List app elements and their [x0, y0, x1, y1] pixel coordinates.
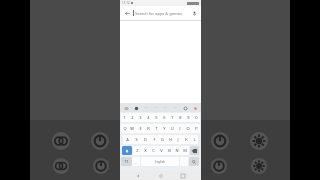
staticText: 3	[139, 115, 142, 120]
button[interactable]: 9	[184, 113, 192, 122]
button[interactable]: D	[141, 135, 150, 144]
button[interactable]: G	[158, 135, 166, 144]
staticText: 5	[155, 115, 158, 120]
button[interactable]: 4	[144, 113, 152, 122]
button[interactable]: Back	[123, 9, 131, 17]
staticText: J	[177, 137, 179, 142]
button[interactable]: 7	[168, 113, 176, 122]
staticText: Search for apps & games	[135, 11, 182, 16]
staticText: L	[193, 137, 196, 142]
button[interactable]: App icon	[93, 158, 109, 174]
button[interactable]: App icon	[91, 132, 109, 150]
button[interactable]: W	[128, 124, 136, 133]
staticText: N	[175, 148, 179, 153]
button[interactable]: App icon	[211, 158, 227, 174]
staticText: Q	[123, 126, 127, 131]
button[interactable]: S	[132, 135, 141, 144]
button[interactable]: 3	[136, 113, 144, 122]
button[interactable]: Suggestion	[162, 105, 168, 110]
button[interactable]: T	[152, 124, 160, 133]
staticText: 7	[171, 115, 174, 120]
button[interactable]: L	[190, 135, 198, 144]
button[interactable]: U	[168, 124, 176, 133]
button[interactable]: B	[165, 146, 173, 155]
staticText: English	[155, 160, 166, 164]
button[interactable]: 8	[176, 113, 184, 122]
staticText: 1	[123, 115, 126, 120]
button[interactable]: More options	[192, 105, 198, 111]
button[interactable]: Home	[157, 172, 165, 180]
staticText: C	[152, 148, 155, 153]
button[interactable]: Suggestion	[153, 105, 159, 110]
button[interactable]: A	[123, 135, 132, 144]
button[interactable]: App icon	[131, 132, 149, 150]
button[interactable]: App icon	[171, 132, 189, 150]
staticText: B	[168, 148, 171, 153]
staticText: 9	[187, 115, 190, 120]
button[interactable]: App icon	[211, 132, 229, 150]
button[interactable]: Shift	[122, 146, 132, 155]
staticText: P	[195, 126, 198, 131]
button[interactable]: X	[141, 146, 149, 155]
staticText: G	[161, 137, 164, 142]
button[interactable]: App icon	[250, 132, 268, 150]
button[interactable]: H	[166, 135, 174, 144]
button[interactable]: English	[141, 157, 179, 166]
staticText: T	[155, 126, 158, 131]
button[interactable]: Back	[134, 172, 142, 180]
button[interactable]: C	[149, 146, 157, 155]
button[interactable]: Q	[121, 124, 128, 133]
button[interactable]: Search	[189, 157, 199, 166]
button[interactable]: Backspace	[190, 146, 199, 155]
staticText: 6	[163, 115, 166, 120]
button[interactable]: Suggestion	[143, 105, 149, 110]
button[interactable]: Search in keyboard	[133, 105, 139, 111]
button[interactable]: R	[144, 124, 152, 133]
button[interactable]: Y	[160, 124, 168, 133]
button[interactable]: 2	[128, 113, 136, 122]
button[interactable]: Search for apps & games	[135, 11, 190, 16]
button[interactable]: Voice search	[190, 9, 198, 17]
button[interactable]: Settings	[182, 105, 188, 111]
button[interactable]: I	[176, 124, 184, 133]
staticText: E	[139, 126, 142, 131]
button[interactable]: E	[136, 124, 144, 133]
button[interactable]: J	[174, 135, 182, 144]
staticText: 2	[131, 115, 134, 120]
button[interactable]: 1	[121, 113, 128, 122]
staticText: H	[169, 137, 172, 142]
button[interactable]: App icon	[132, 158, 148, 174]
button[interactable]: K	[182, 135, 190, 144]
staticText: O	[186, 126, 190, 131]
staticText: S	[135, 137, 138, 142]
button[interactable]: 0	[192, 113, 200, 122]
button[interactable]: 6	[160, 113, 168, 122]
button[interactable]: 5	[152, 113, 160, 122]
button[interactable]: Suggestion	[172, 105, 178, 110]
staticText: X	[144, 148, 147, 153]
button[interactable]: P	[192, 124, 200, 133]
staticText: Z	[136, 148, 139, 153]
button[interactable]: App icon	[251, 158, 267, 174]
button[interactable]: M	[181, 146, 189, 155]
button[interactable]: ?1	[121, 157, 132, 166]
button[interactable]: App icon	[172, 158, 188, 174]
button[interactable]: App icon	[52, 132, 70, 150]
staticText: A	[126, 137, 129, 142]
button[interactable]: Emoji sticker	[123, 105, 129, 111]
button[interactable]: O	[184, 124, 192, 133]
staticText: R	[147, 126, 150, 131]
button[interactable]: Z	[133, 146, 141, 155]
staticText: .	[183, 159, 185, 164]
button[interactable]: ,	[132, 157, 140, 166]
button[interactable]: V	[157, 146, 165, 155]
button[interactable]: App icon	[53, 158, 69, 174]
button[interactable]: Recent apps	[179, 172, 187, 180]
staticText: D	[144, 137, 147, 142]
button[interactable]: N	[173, 146, 181, 155]
staticText: I	[179, 126, 181, 131]
staticText: W	[130, 126, 134, 131]
staticText: 4	[147, 115, 150, 120]
button[interactable]: F	[150, 135, 158, 144]
